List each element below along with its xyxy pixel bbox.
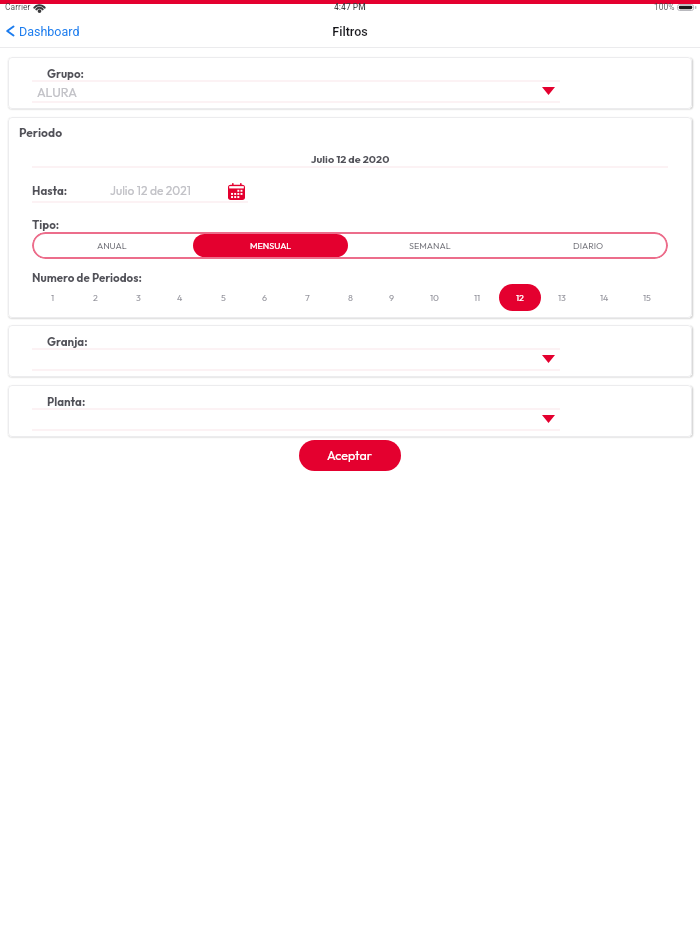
staticText: 12: [516, 292, 524, 303]
button[interactable]: Open planta dropdown: [542, 415, 555, 423]
button[interactable]: 9: [371, 284, 413, 311]
staticText: 100%: [654, 2, 675, 12]
button[interactable]: 12: [499, 284, 541, 311]
staticText: 15: [643, 292, 651, 303]
staticText: Filtros: [0, 24, 700, 39]
staticText: 6: [262, 292, 268, 303]
button[interactable]: 6: [244, 284, 286, 311]
button[interactable]: ANUAL: [34, 234, 189, 257]
staticText: 2: [93, 292, 98, 303]
staticText: 14: [600, 292, 609, 303]
button[interactable]: 1: [32, 284, 74, 311]
button[interactable]: 4: [159, 284, 201, 311]
staticText: Julio 12 de 2021: [110, 183, 191, 198]
button[interactable]: MENSUAL: [193, 234, 348, 257]
button[interactable]: Open grupo dropdown: [542, 87, 555, 95]
staticText: MENSUAL: [250, 240, 292, 251]
staticText: 8: [348, 292, 353, 303]
staticText: 4: [177, 292, 183, 303]
staticText: Carrier: [5, 2, 31, 12]
staticText: 11: [474, 292, 481, 303]
button[interactable]: Aceptar: [299, 440, 401, 471]
button[interactable]: 14: [583, 284, 625, 311]
staticText: Planta:: [47, 394, 86, 408]
button[interactable]: SEMANAL: [352, 234, 507, 257]
button[interactable]: 8: [329, 284, 371, 311]
button[interactable]: 7: [286, 284, 328, 311]
staticText: 1: [51, 292, 55, 303]
button[interactable]: 5: [202, 284, 244, 311]
button[interactable]: 2: [74, 284, 116, 311]
button[interactable]: Open granja dropdown: [542, 355, 555, 363]
staticText: Periodo: [19, 125, 63, 140]
button[interactable]: 13: [541, 284, 583, 311]
button[interactable]: 10: [414, 284, 456, 311]
button[interactable]: DIARIO: [511, 234, 666, 257]
staticText: 13: [558, 292, 566, 303]
staticText: 4:47 PM: [334, 2, 366, 12]
staticText: Aceptar: [327, 447, 373, 463]
staticText: DIARIO: [573, 240, 604, 251]
staticText: Hasta:: [32, 183, 68, 197]
staticText: Grupo:: [47, 66, 84, 80]
staticText: 3: [136, 292, 141, 303]
button[interactable]: 15: [626, 284, 668, 311]
staticText: Dashboard: [19, 24, 80, 39]
staticText: ALURA: [37, 84, 77, 100]
button[interactable]: Choose date: [228, 183, 245, 200]
staticText: SEMANAL: [409, 240, 451, 251]
staticText: 5: [221, 292, 226, 303]
staticText: 10: [430, 292, 440, 303]
button[interactable]: 3: [117, 284, 159, 311]
staticText: 9: [389, 292, 395, 303]
button[interactable]: Dashboard: [5, 23, 80, 39]
staticText: Granja:: [47, 334, 88, 348]
staticText: Tipo:: [32, 217, 60, 231]
staticText: Julio 12 de 2020: [8, 152, 692, 166]
staticText: Numero de Periodos:: [32, 270, 142, 284]
staticText: ANUAL: [97, 240, 127, 251]
button[interactable]: 11: [456, 284, 498, 311]
staticText: 7: [305, 292, 310, 303]
